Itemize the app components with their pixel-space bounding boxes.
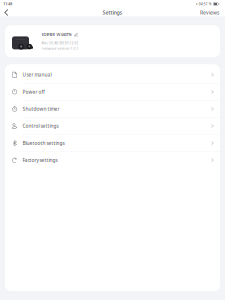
staticText: Bluetooth settings <box>22 140 64 146</box>
staticText: 04:51 % <box>199 2 212 6</box>
staticText: Mac:0C:AE:BD:30:12:62 <box>41 41 78 45</box>
button[interactable]: Bluetooth settings <box>5 135 220 152</box>
staticText: Reviews <box>200 9 219 16</box>
staticText: EDIFIER W340TN <box>41 32 71 37</box>
staticText: 11:48 <box>3 2 12 6</box>
button[interactable]: Power off <box>5 83 220 101</box>
button[interactable]: User manual <box>5 66 220 83</box>
staticText: Control settings <box>22 123 58 129</box>
button[interactable]: Control settings <box>5 118 220 135</box>
button[interactable]: EDIFIER W340TN <box>5 25 220 57</box>
staticText: Power off <box>22 88 44 95</box>
button[interactable]: Reviews <box>198 7 221 18</box>
staticText: Firmware version 1.0.1 <box>41 46 78 51</box>
button[interactable]: Factory settings <box>5 152 220 168</box>
staticText: Factory settings <box>22 157 57 163</box>
staticText: User manual <box>22 71 51 78</box>
button[interactable]: Shutdown timer <box>5 101 220 118</box>
staticText: Shutdown timer <box>22 106 59 112</box>
button[interactable]: Back <box>1 7 12 17</box>
staticText: Settings <box>102 9 122 16</box>
